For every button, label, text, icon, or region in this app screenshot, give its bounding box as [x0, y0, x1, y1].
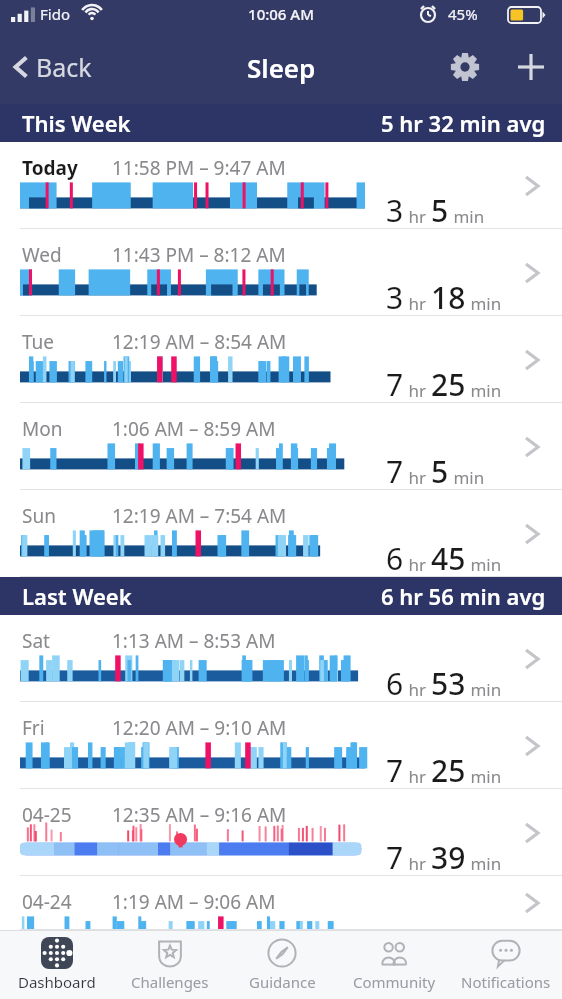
staticText: Sat [22, 628, 50, 654]
staticText: Fido [40, 4, 70, 24]
staticText: Notifications [461, 972, 551, 992]
staticText: 12:19 AM – 7:54 AM [112, 503, 287, 529]
staticText: 7 [386, 750, 404, 791]
button[interactable]: Add sleep log [504, 40, 562, 94]
button[interactable]: Notifications [450, 930, 562, 999]
staticText: min [466, 939, 502, 962]
staticText: Guidance [249, 972, 316, 992]
staticText: min [466, 553, 502, 576]
staticText: 39 [431, 837, 466, 878]
staticText: 1:19 AM – 9:06 AM [112, 889, 276, 915]
staticText: Tue [22, 329, 55, 355]
button[interactable]: Sat [0, 615, 562, 702]
staticText: 45% [448, 4, 478, 24]
staticText: 1:06 AM – 8:59 AM [112, 416, 276, 442]
staticText: min [466, 852, 502, 875]
staticText: 3 [386, 190, 404, 231]
staticText: 3 [386, 277, 404, 318]
button[interactable]: Settings [440, 42, 490, 92]
staticText: Sun [22, 503, 56, 529]
staticText: min [449, 205, 485, 228]
button[interactable]: Tue [0, 316, 562, 403]
staticText: hr [404, 678, 431, 701]
staticText: Community [353, 972, 436, 992]
staticText: 7 [386, 364, 404, 405]
staticText: Fri [22, 715, 45, 741]
staticText: min [466, 292, 502, 315]
staticText: min [466, 765, 502, 788]
button[interactable]: Challenges [113, 930, 226, 999]
staticText: 10:06 AM [0, 4, 562, 24]
staticText: hr [404, 466, 431, 489]
staticText: 5 [431, 451, 449, 492]
staticText: Sleep [247, 50, 316, 85]
staticText: Today [22, 155, 78, 181]
staticText: 11:58 PM – 9:47 AM [112, 155, 286, 181]
staticText: hr [404, 939, 431, 962]
staticText: 11:43 PM – 8:12 AM [112, 242, 286, 268]
staticText: hr [404, 205, 431, 228]
staticText: hr [404, 852, 431, 875]
button[interactable]: 04-24 [0, 876, 562, 930]
button[interactable]: 04-25 [0, 789, 562, 876]
button[interactable]: Wed [0, 229, 562, 316]
staticText: 25 [431, 750, 466, 791]
staticText: Dashboard [18, 972, 96, 992]
staticText: Challenges [131, 972, 209, 992]
staticText: 7 [386, 837, 404, 878]
staticText: min [466, 379, 502, 402]
staticText: 12:19 AM – 8:54 AM [112, 329, 287, 355]
staticText: min [466, 678, 502, 701]
staticText: 12:20 AM – 9:10 AM [112, 715, 287, 741]
staticText: Last Week [22, 581, 132, 611]
staticText: Back [36, 50, 92, 84]
staticText: 6 hr 56 min avg [381, 581, 546, 611]
staticText: Mon [22, 416, 63, 442]
staticText: hr [404, 765, 431, 788]
button[interactable]: Community [338, 930, 450, 999]
staticText: 18 [431, 277, 466, 318]
staticText: 6 [386, 538, 404, 579]
staticText: 6 [386, 924, 404, 965]
staticText: hr [404, 379, 431, 402]
staticText: 7 [386, 451, 404, 492]
staticText: min [449, 466, 485, 489]
staticText: 04-25 [22, 802, 72, 828]
button[interactable]: Back [0, 42, 106, 92]
staticText: 6 [386, 663, 404, 704]
button[interactable]: Sun [0, 490, 562, 577]
staticText: 5 [431, 190, 449, 231]
staticText: 12:35 AM – 9:16 AM [112, 802, 287, 828]
staticText: This Week [22, 108, 131, 138]
button[interactable]: Mon [0, 403, 562, 490]
staticText: 45 [431, 538, 466, 579]
button[interactable]: Today [0, 142, 562, 229]
staticText: 1:13 AM – 8:53 AM [112, 628, 276, 654]
staticText: 04-24 [22, 889, 72, 915]
button[interactable]: Fri [0, 702, 562, 789]
staticText: hr [404, 553, 431, 576]
staticText: 53 [431, 663, 466, 704]
button[interactable]: Guidance [226, 930, 338, 999]
staticText: hr [404, 292, 431, 315]
staticText: 25 [431, 364, 466, 405]
staticText: 5 hr 32 min avg [381, 108, 546, 138]
staticText: Wed [22, 242, 62, 268]
button[interactable]: Dashboard [0, 930, 113, 999]
staticText: 56 [431, 924, 466, 965]
